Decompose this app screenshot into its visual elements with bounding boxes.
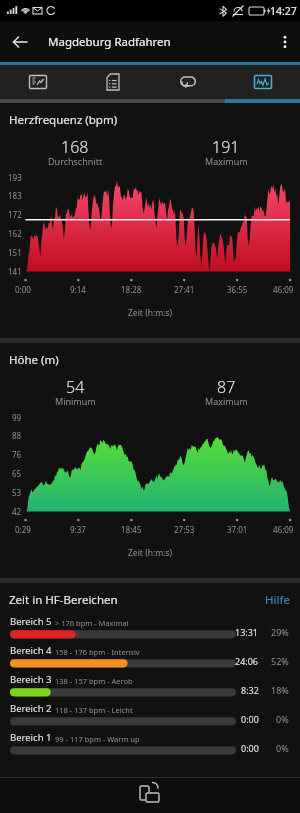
staticText: 183 — [8, 190, 22, 201]
button[interactable]: Bereich 2 — [0, 701, 300, 730]
staticText: 46:09 — [273, 524, 294, 535]
staticText: Magdeburg Radfahren — [48, 34, 171, 50]
staticText: 0:00 — [241, 742, 259, 754]
staticText: 8:32 — [241, 684, 259, 696]
button[interactable]: Bereich 4 — [0, 643, 300, 672]
button[interactable]: Details — [75, 62, 150, 103]
staticText: 9:37 — [70, 524, 86, 535]
staticText: 99 - 117 bpm - Warm up — [55, 734, 140, 744]
staticText: 24:06 — [235, 655, 259, 667]
staticText: 191 — [212, 136, 240, 158]
button[interactable]: More options — [270, 21, 300, 62]
staticText: 42 — [12, 506, 22, 517]
staticText: 99 — [12, 412, 22, 423]
staticText: 0:00 — [15, 284, 31, 295]
button[interactable]: Back — [0, 21, 40, 62]
staticText: 29% — [271, 626, 289, 638]
staticText: 0:29 — [15, 524, 31, 535]
button[interactable]: Laps — [150, 62, 225, 103]
button[interactable]: Bereich 5 — [0, 614, 300, 643]
staticText: 53 — [12, 487, 22, 498]
button[interactable]: Map — [0, 62, 75, 103]
staticText: Hilfe — [265, 592, 290, 608]
staticText: Maximum — [205, 155, 248, 167]
staticText: 193 — [8, 172, 22, 183]
staticText: Maximum — [205, 395, 248, 407]
staticText: Zeit (h:m:s) — [128, 307, 173, 319]
staticText: 88 — [12, 430, 22, 441]
staticText: 14:27 — [270, 4, 297, 18]
staticText: 0% — [276, 742, 289, 754]
staticText: 65 — [12, 468, 22, 479]
staticText: Bereich 4 — [10, 644, 52, 657]
staticText: 162 — [8, 228, 22, 239]
staticText: 158 - 176 bpm - Intensiv — [55, 647, 140, 657]
staticText: 18% — [271, 684, 289, 696]
staticText: 168 — [61, 136, 89, 158]
staticText: 118 - 137 bpm - Leicht — [55, 705, 133, 715]
staticText: 13:31 — [235, 626, 259, 638]
staticText: 46:09 — [273, 284, 294, 295]
button[interactable]: Bereich 1 — [0, 730, 300, 759]
staticText: Minimum — [55, 395, 96, 407]
staticText: 54 — [66, 376, 85, 398]
staticText: 27:41 — [174, 284, 195, 295]
staticText: 18:45 — [121, 524, 142, 535]
staticText: Höhe (m) — [9, 352, 59, 368]
staticText: 87 — [217, 376, 236, 398]
staticText: Bereich 3 — [10, 673, 52, 686]
staticText: Bereich 2 — [10, 702, 52, 715]
button[interactable]: Hilfe — [263, 590, 292, 610]
button[interactable]: Charts — [225, 62, 300, 103]
staticText: 0% — [276, 713, 289, 725]
staticText: Herzfrequenz (bpm) — [9, 112, 118, 128]
staticText: 18:28 — [121, 284, 142, 295]
staticText: Zeit in HF-Bereichen — [9, 592, 118, 608]
staticText: 0:00 — [241, 713, 259, 725]
button[interactable]: Share to device — [133, 778, 167, 812]
staticText: 138 - 157 bpm - Aerob — [55, 676, 133, 686]
staticText: Durchschnitt — [48, 155, 103, 167]
staticText: 9:14 — [70, 284, 86, 295]
staticText: 76 — [12, 449, 22, 460]
button[interactable]: Bereich 3 — [0, 672, 300, 701]
staticText: 37:01 — [227, 524, 248, 535]
staticText: Bereich 1 — [10, 731, 52, 744]
staticText: 52% — [271, 655, 289, 667]
staticText: 141 — [8, 266, 22, 277]
staticText: 151 — [8, 247, 22, 258]
staticText: 172 — [8, 209, 22, 220]
staticText: 36:55 — [227, 284, 248, 295]
staticText: Zeit (h:m:s) — [128, 547, 173, 559]
staticText: Bereich 5 — [10, 615, 52, 628]
staticText: 27:53 — [174, 524, 195, 535]
staticText: > 176 bpm - Maximal — [55, 618, 129, 628]
